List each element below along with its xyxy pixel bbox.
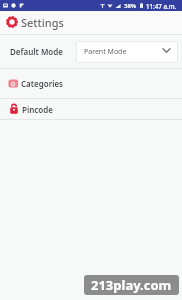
staticText: 38% — [124, 2, 137, 10]
staticText: 11:47 a.m. — [146, 2, 177, 10]
staticText: Settings — [21, 15, 64, 30]
button[interactable]: Categories — [0, 69, 182, 98]
button[interactable]: Pincode — [0, 99, 182, 119]
button[interactable]: Parent Mode — [76, 41, 178, 63]
staticText: Categories — [21, 78, 64, 89]
staticText: Pincode — [22, 104, 53, 115]
staticText: 213play.com — [91, 276, 172, 294]
staticText: Default Mode — [10, 46, 63, 57]
staticText: Parent Mode — [84, 47, 127, 57]
